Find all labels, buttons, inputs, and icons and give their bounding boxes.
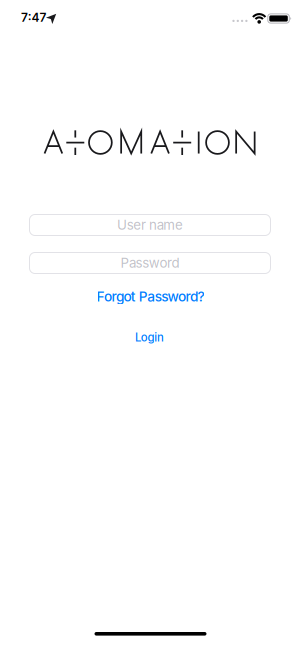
button[interactable]: Forgot Password?: [97, 288, 204, 305]
staticText: Password: [120, 255, 180, 271]
staticText: Login: [135, 331, 164, 344]
button[interactable]: Login: [135, 331, 164, 344]
staticText: Forgot Password?: [97, 288, 204, 305]
staticText: User name: [117, 217, 183, 233]
button[interactable]: Password: [29, 252, 271, 274]
staticText: 7:47: [21, 10, 46, 25]
button[interactable]: User name: [29, 214, 271, 236]
